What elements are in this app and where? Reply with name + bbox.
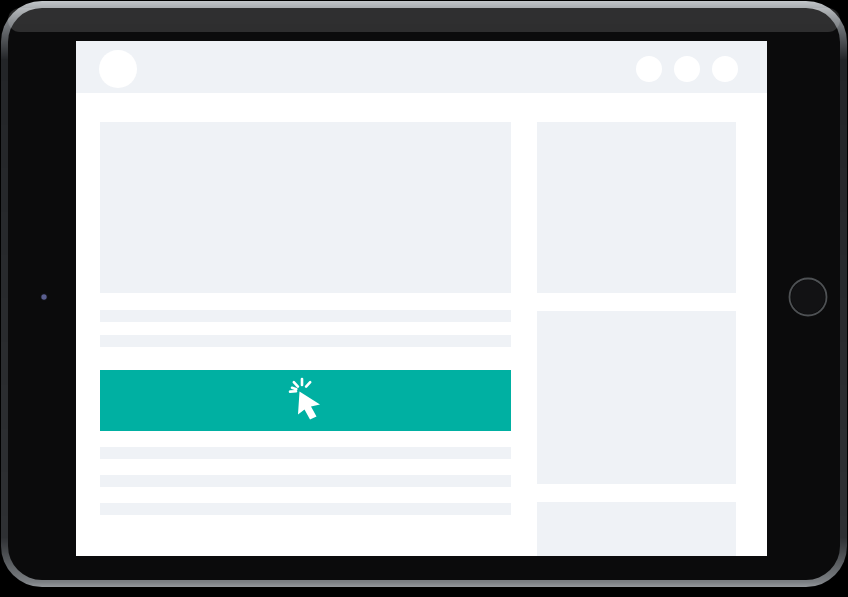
button[interactable]: Settings xyxy=(712,56,738,82)
button[interactable]: Messages xyxy=(674,56,700,82)
button[interactable]: Notifications xyxy=(636,56,662,82)
button[interactable]: Call to action button xyxy=(100,370,511,431)
button[interactable]: Home xyxy=(790,279,826,315)
button[interactable]: Profile xyxy=(99,50,137,88)
